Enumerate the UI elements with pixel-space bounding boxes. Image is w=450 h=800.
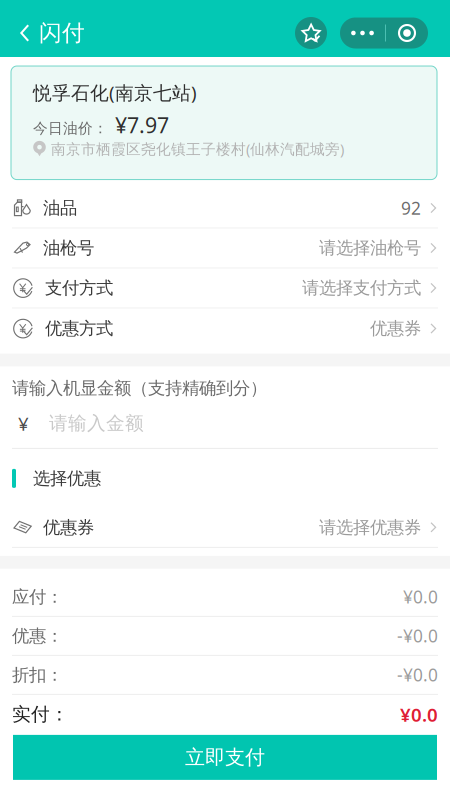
staticText: ¥0.0 (400, 702, 438, 727)
staticText: 请输入金额 (49, 412, 144, 435)
button[interactable]: 优惠券 (0, 508, 450, 548)
button[interactable]: 油枪号 (0, 229, 450, 269)
staticText: 92 (401, 197, 421, 220)
staticText: 油枪号 (43, 237, 94, 259)
staticText: 今日油价： (33, 119, 108, 137)
staticText: 请选择油枪号 (319, 237, 421, 259)
staticText: 闪付 (39, 19, 85, 47)
staticText: 优惠： (12, 625, 63, 646)
staticText: 悦孚石化(南京七站) (33, 80, 197, 105)
staticText: 优惠方式 (45, 318, 113, 339)
staticText: 折扣： (12, 664, 63, 685)
staticText: 选择优惠 (33, 468, 101, 489)
staticText: 实付： (12, 703, 69, 726)
staticText: 请选择支付方式 (302, 277, 421, 299)
staticText: 油品 (43, 197, 77, 219)
button[interactable]: More (340, 17, 385, 48)
button[interactable]: 支付方式 (0, 269, 450, 309)
staticText: 支付方式 (45, 277, 113, 299)
staticText: 立即支付 (185, 745, 265, 770)
staticText: 优惠券 (370, 318, 421, 339)
button[interactable]: 立即支付 (13, 735, 437, 780)
staticText: ¥7.97 (115, 111, 169, 139)
staticText: 应付： (12, 586, 63, 607)
staticText: -¥0.0 (397, 663, 438, 686)
staticText: ¥ (18, 411, 29, 436)
button[interactable]: Close (386, 17, 428, 48)
button[interactable]: Favorite (294, 17, 328, 49)
button[interactable]: 优惠方式 (0, 309, 450, 349)
button[interactable]: 油品 (0, 189, 450, 229)
staticText: 请选择优惠券 (319, 517, 421, 538)
button[interactable]: 闪付 (0, 14, 97, 52)
staticText: -¥0.0 (397, 624, 438, 647)
staticText: 优惠券 (43, 517, 94, 538)
staticText: 南京市栖霞区尧化镇王子楼村(仙林汽配城旁) (51, 139, 344, 159)
staticText: 请输入机显金额（支持精确到分） (12, 378, 267, 399)
staticText: ¥0.0 (403, 585, 438, 608)
